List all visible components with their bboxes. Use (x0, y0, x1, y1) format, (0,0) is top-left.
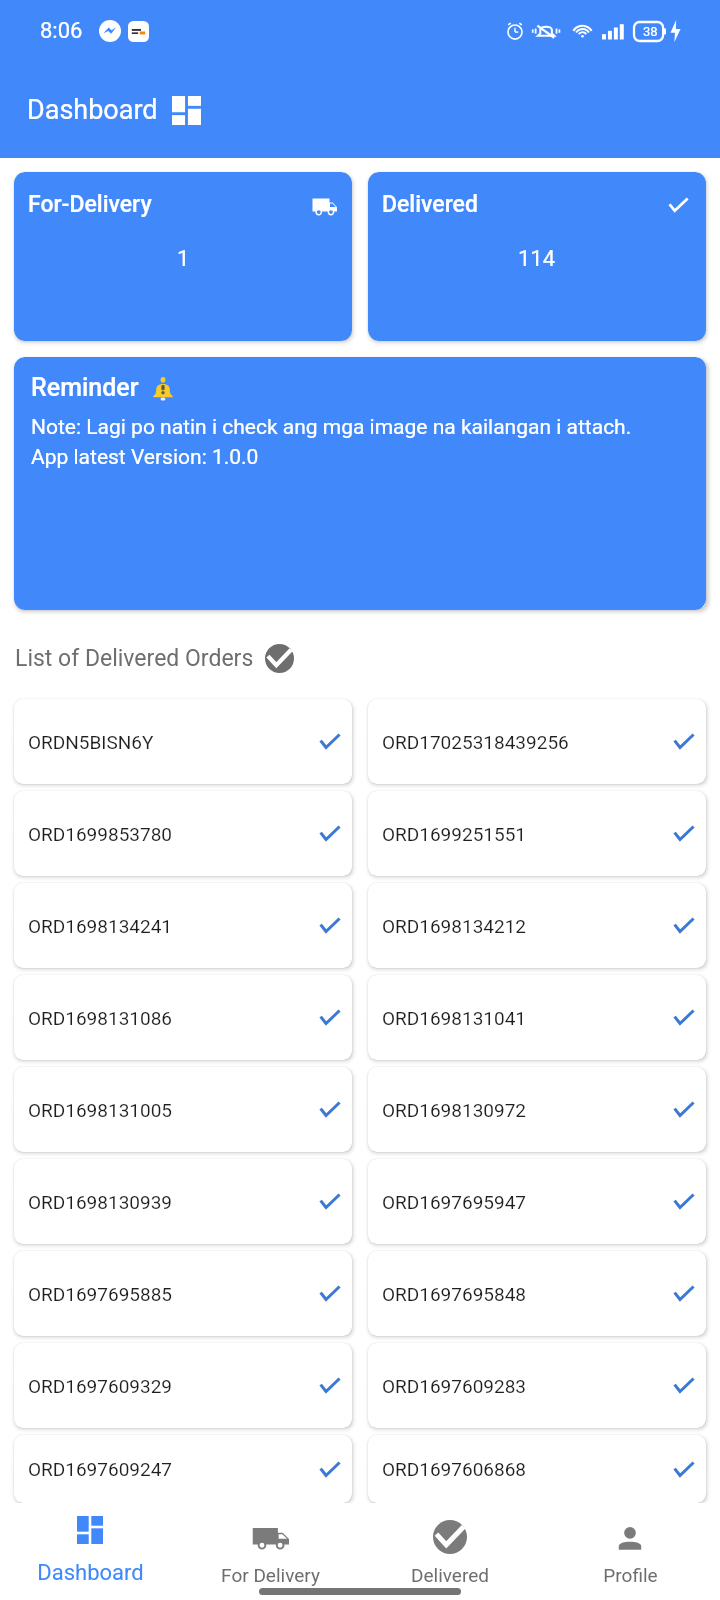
staticText: Profile (603, 1564, 658, 1586)
button[interactable]: Reminder (14, 357, 706, 610)
button[interactable]: Dashboard (172, 96, 201, 125)
button[interactable]: ORD1699853780 (14, 791, 352, 876)
staticText: Note: Lagi po natin i check ang mga imag… (31, 415, 632, 440)
button[interactable]: For Delivery (180, 1503, 360, 1600)
button[interactable]: ORD1697609329 (14, 1343, 352, 1428)
staticText: 8:06 (40, 18, 83, 44)
button[interactable]: ORD1698131086 (14, 975, 352, 1060)
staticText: ORD1697695947 (382, 1191, 527, 1213)
staticText: ORD1699251551 (382, 823, 527, 845)
button[interactable]: ORD1697609283 (368, 1343, 706, 1428)
staticText: ORD1698130972 (382, 1099, 527, 1121)
button[interactable]: ORD17025318439256 (368, 699, 706, 784)
staticText: Reminder (31, 373, 139, 402)
staticText: App latest Version: 1.0.0 (31, 445, 259, 470)
staticText: ORD1698130939 (28, 1191, 173, 1213)
staticText: ORD1698131086 (28, 1007, 173, 1029)
staticText: For Delivery (221, 1564, 320, 1586)
button[interactable]: ORD1697695885 (14, 1251, 352, 1336)
staticText: Delivered (411, 1564, 489, 1586)
staticText: ORD1697609329 (28, 1375, 173, 1397)
button[interactable]: Delivered (368, 172, 706, 341)
button[interactable]: ORD1697695848 (368, 1251, 706, 1336)
staticText: ORD1698131005 (28, 1099, 173, 1121)
button[interactable]: ORDN5BISN6Y (14, 699, 352, 784)
staticText: ORD1697695885 (28, 1283, 173, 1305)
staticText: ORD1697695848 (382, 1283, 527, 1305)
staticText: For-Delivery (28, 191, 152, 218)
button[interactable]: ORD1698130939 (14, 1159, 352, 1244)
button[interactable]: ORD1697695947 (368, 1159, 706, 1244)
button[interactable]: Delivered (360, 1503, 540, 1600)
staticText: ORD1697609247 (28, 1458, 173, 1480)
staticText: 38 (643, 24, 658, 39)
staticText: ORD17025318439256 (382, 731, 569, 753)
button[interactable]: ORD1697606868 (368, 1435, 706, 1503)
button[interactable]: ORD1698130972 (368, 1067, 706, 1152)
button[interactable]: ORD1697609247 (14, 1435, 352, 1503)
staticText: Dashboard (37, 1560, 144, 1586)
button[interactable]: ORD1698134212 (368, 883, 706, 968)
button[interactable]: ORD1698131041 (368, 975, 706, 1060)
staticText: 1 (177, 246, 190, 272)
staticText: ORD1697606868 (382, 1458, 527, 1480)
button[interactable]: For-Delivery (14, 172, 352, 341)
staticText: ORD1698134212 (382, 915, 527, 937)
staticText: 114 (518, 246, 556, 272)
staticText: Dashboard (27, 94, 158, 126)
staticText: ORD1698134241 (28, 915, 173, 937)
button[interactable]: ORD1698134241 (14, 883, 352, 968)
staticText: Delivered (382, 191, 478, 218)
staticText: ORD1697609283 (382, 1375, 527, 1397)
button[interactable]: ORD1699251551 (368, 791, 706, 876)
staticText: ORD1698131041 (382, 1007, 527, 1029)
button[interactable]: Profile (540, 1503, 720, 1600)
staticText: List of Delivered Orders (15, 645, 254, 672)
staticText: ORDN5BISN6Y (28, 731, 154, 753)
button[interactable]: Dashboard (0, 1503, 180, 1600)
button[interactable]: ORD1698131005 (14, 1067, 352, 1152)
staticText: ORD1699853780 (28, 823, 173, 845)
